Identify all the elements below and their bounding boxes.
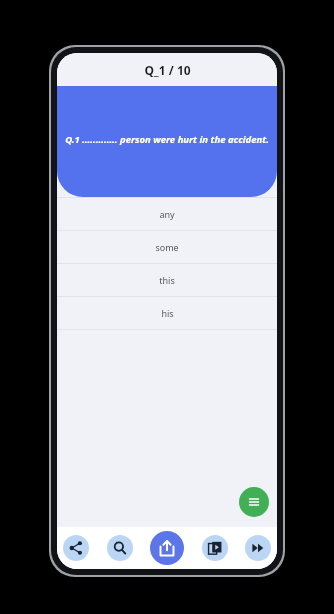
- staticText: this: [159, 274, 175, 286]
- staticText: some: [155, 241, 179, 253]
- button[interactable]: Next: [245, 535, 271, 561]
- button[interactable]: Share: [63, 535, 89, 561]
- staticText: any: [159, 208, 175, 220]
- button[interactable]: any: [57, 198, 277, 230]
- staticText: Q_1 / 10: [144, 62, 191, 78]
- button[interactable]: this: [57, 264, 277, 296]
- button[interactable]: Upload: [150, 531, 184, 565]
- button[interactable]: Q.1 ............. person were hurt in th…: [57, 86, 277, 197]
- button[interactable]: Library: [202, 535, 228, 561]
- button[interactable]: Menu: [239, 487, 269, 517]
- staticText: Q.1 ............. person were hurt in th…: [65, 133, 269, 146]
- staticText: his: [161, 307, 174, 319]
- button[interactable]: Search: [107, 535, 133, 561]
- button[interactable]: some: [57, 231, 277, 263]
- button[interactable]: his: [57, 297, 277, 329]
